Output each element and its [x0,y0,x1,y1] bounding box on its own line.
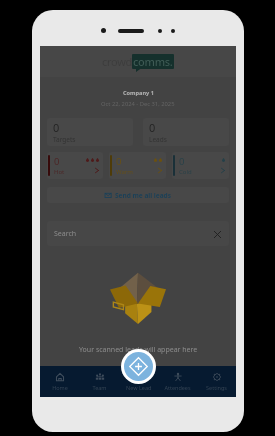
button[interactable]: Settings [197,366,236,397]
staticText: Cold [179,168,192,176]
staticText: Send me all leads [115,191,171,200]
staticText: Your scanned leads will appear here [79,345,198,355]
staticText: 0 [54,155,60,168]
staticText: Attendees [164,384,191,391]
staticText: Home [52,384,68,391]
button[interactable]: Attendees [158,366,197,397]
button[interactable]: Clear search [212,229,222,239]
staticText: Oct 22, 2024 - Dec 31, 2025 [101,100,175,108]
button[interactable]: New Lead [119,366,158,397]
staticText: New Lead [126,384,152,391]
button[interactable]: 0 [109,152,166,179]
staticText: Targets [53,135,76,144]
staticText: 0 [53,120,60,135]
staticText: Team [92,384,107,391]
button[interactable]: Home [40,366,80,397]
button[interactable]: New Lead [121,349,156,384]
button[interactable]: 0 [47,118,133,146]
staticText: Leads [149,135,167,144]
staticText: comms. [133,54,173,69]
staticText: 0 [149,120,156,135]
staticText: 0 [179,155,185,168]
button[interactable]: Send me all leads [47,187,229,203]
button[interactable]: 0 [172,152,229,179]
button[interactable]: Search [47,221,229,246]
staticText: Search [54,229,77,239]
staticText: crowd [102,54,132,69]
staticText: Settings [206,384,227,391]
staticText: Company 1 [123,89,154,97]
button[interactable]: 0 [47,152,103,179]
button[interactable]: Team [80,366,119,397]
staticText: Hot [54,168,65,176]
staticText: 0 [116,155,122,168]
staticText: Warm [116,168,133,176]
